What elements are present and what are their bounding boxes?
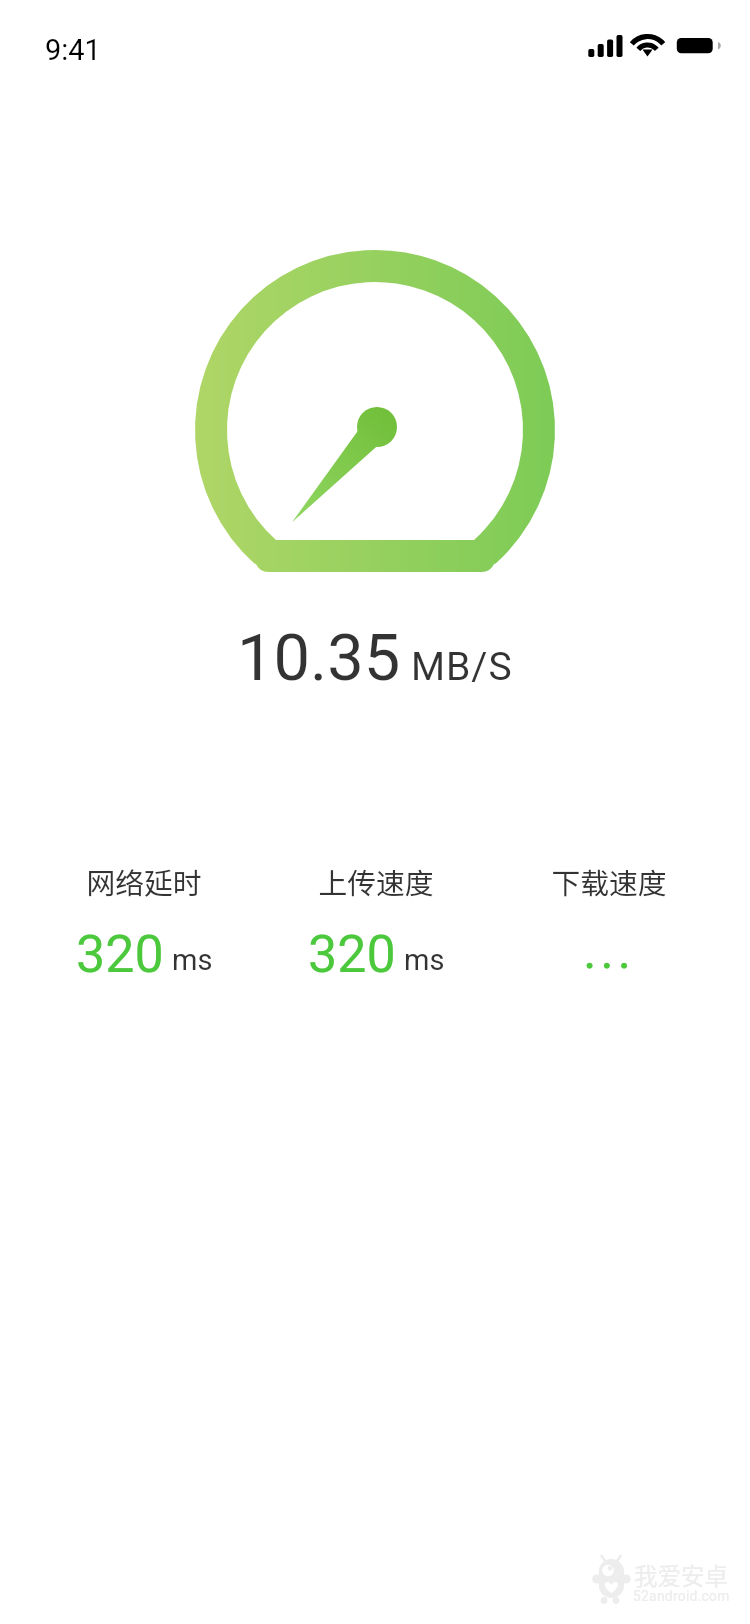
staticText: 上传速度 bbox=[261, 861, 491, 903]
staticText: 320 bbox=[76, 924, 164, 985]
staticText: 9:41 bbox=[45, 33, 101, 67]
staticText: 我爱安卓 bbox=[634, 1558, 728, 1592]
staticText: 网络延时 bbox=[29, 861, 259, 903]
staticText: ... bbox=[583, 920, 635, 981]
button[interactable]: 开始测速 Start speed test bbox=[195, 250, 555, 572]
staticText: ms bbox=[172, 943, 213, 977]
button[interactable]: 上传速度 bbox=[261, 855, 491, 985]
staticText: 10.35 bbox=[237, 620, 401, 696]
button[interactable]: 网络延时 bbox=[29, 855, 259, 985]
staticText: 下载速度 bbox=[494, 861, 724, 903]
button[interactable]: 下载速度 bbox=[494, 855, 724, 985]
staticText: MB/S bbox=[411, 644, 513, 690]
staticText: 52android.com bbox=[633, 1588, 730, 1604]
staticText: 320 bbox=[308, 924, 396, 985]
staticText: ms bbox=[404, 943, 445, 977]
